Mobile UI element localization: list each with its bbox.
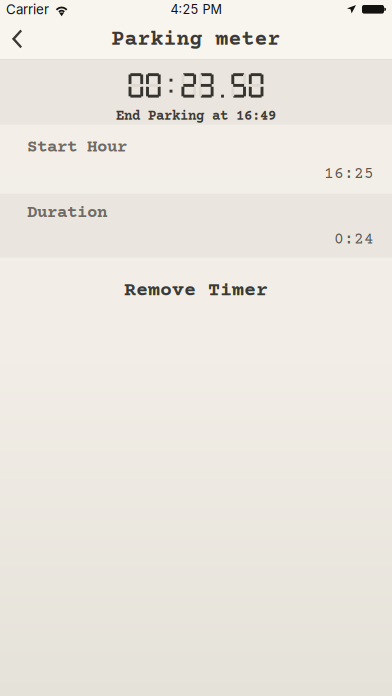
staticText: Duration <box>27 203 107 223</box>
button[interactable]: Back <box>0 19 38 59</box>
staticText: End Parking at 16:49 <box>116 109 276 124</box>
staticText: Parking meter <box>111 28 280 52</box>
button[interactable]: Remove Timer <box>0 258 392 318</box>
button[interactable]: Start Hour <box>0 125 392 194</box>
staticText: Carrier <box>6 1 49 17</box>
button[interactable]: Duration <box>0 194 392 258</box>
staticText: 4:25 PM <box>170 2 221 17</box>
staticText: Remove Timer <box>124 280 268 302</box>
staticText: 16:25 <box>324 165 374 184</box>
staticText: 0:24 <box>334 231 374 249</box>
staticText: Start Hour <box>27 138 127 157</box>
